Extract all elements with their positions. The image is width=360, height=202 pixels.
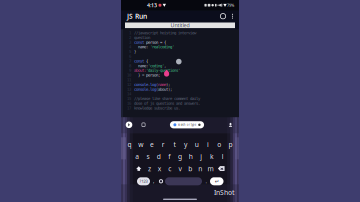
staticText: knowledge subscribe us. — [134, 106, 180, 110]
button[interactable]: search or type — [170, 121, 204, 128]
button[interactable]: Clipboard — [139, 120, 148, 129]
staticText: o — [217, 140, 221, 149]
staticText: 1 — [129, 31, 131, 35]
staticText: 6 — [129, 54, 131, 59]
staticText: 4 — [129, 45, 131, 49]
staticText: question — [134, 35, 150, 40]
button[interactable]: Run code — [218, 11, 228, 22]
button[interactable]: d — [153, 150, 164, 162]
staticText: m — [207, 164, 213, 173]
staticText: u — [195, 140, 199, 149]
staticText: person — [146, 73, 158, 77]
button[interactable]: . — [202, 177, 210, 186]
staticText: const — [134, 40, 144, 44]
button[interactable]: t — [169, 138, 180, 150]
button[interactable]: i — [202, 138, 214, 150]
button[interactable]: g — [175, 150, 185, 162]
button[interactable]: Untitled — [121, 22, 239, 29]
button[interactable]: Shift — [133, 163, 144, 175]
button[interactable]: k — [207, 150, 217, 162]
button[interactable]: c — [165, 163, 175, 175]
staticText: console.log( — [134, 87, 158, 91]
button[interactable]: r — [158, 138, 169, 150]
staticText: 9 — [129, 68, 131, 73]
staticText: JS Run — [127, 12, 147, 21]
staticText: x — [158, 164, 162, 173]
staticText: about — [158, 87, 168, 91]
staticText: k — [210, 152, 214, 161]
button[interactable]: v — [175, 163, 185, 175]
staticText: 10 — [127, 73, 131, 77]
button[interactable]: x — [155, 163, 165, 175]
staticText: h — [189, 152, 193, 161]
button[interactable]: p — [225, 138, 236, 150]
staticText: name: — [134, 45, 150, 49]
button[interactable]: y — [180, 138, 191, 150]
staticText: } = — [134, 73, 146, 77]
staticText: 'realcoding' — [150, 45, 174, 49]
staticText: 15 — [127, 96, 131, 101]
button[interactable]: Delete — [215, 163, 227, 175]
staticText: ↵ — [215, 178, 219, 184]
staticText: InShot — [214, 188, 235, 197]
button[interactable]: a — [132, 150, 143, 162]
button[interactable]: w — [135, 138, 146, 150]
button[interactable]: q — [124, 138, 135, 150]
button[interactable]: z — [144, 163, 155, 175]
button[interactable]: Space — [165, 177, 202, 185]
button[interactable]: m — [205, 163, 215, 175]
button[interactable]: , — [150, 177, 157, 186]
staticText: z — [148, 164, 151, 173]
button[interactable]: b — [185, 163, 195, 175]
staticText: n — [198, 164, 202, 173]
staticText: { — [144, 59, 148, 63]
staticText: , — [153, 178, 154, 185]
staticText: 7 — [129, 59, 131, 63]
staticText: person = { — [144, 40, 166, 44]
staticText: 12 — [127, 82, 131, 87]
staticText: , — [164, 63, 166, 68]
button[interactable]: l — [217, 150, 228, 162]
staticText: i — [207, 140, 209, 149]
staticText: dose of js questions and answers. — [134, 101, 200, 106]
staticText: 8 — [129, 63, 131, 68]
staticText: j — [200, 152, 202, 161]
staticText: r — [162, 140, 165, 149]
staticText: l — [222, 152, 224, 161]
button[interactable]: o — [214, 138, 225, 150]
staticText: console.log( — [134, 82, 158, 87]
staticText: 16 — [127, 101, 131, 106]
button[interactable]: Enter — [210, 177, 223, 185]
button[interactable]: Emoji — [157, 177, 165, 186]
staticText: 13 — [127, 87, 131, 91]
button[interactable]: e — [146, 138, 158, 150]
button[interactable]: n — [195, 163, 205, 175]
button[interactable]: More options — [228, 11, 237, 22]
staticText: q — [128, 140, 132, 149]
staticText: t — [173, 140, 175, 149]
button[interactable]: f — [164, 150, 175, 162]
button[interactable]: ?123 — [137, 177, 150, 185]
staticText: e — [150, 140, 154, 149]
staticText: s — [146, 152, 149, 161]
staticText: 17 — [127, 106, 131, 110]
button[interactable]: Voice input — [226, 120, 235, 129]
staticText: 'daily-questions' — [146, 68, 180, 73]
button[interactable]: j — [196, 150, 207, 162]
staticText: v — [178, 164, 181, 173]
staticText: name: — [134, 63, 148, 68]
staticText: ; — [158, 73, 160, 77]
staticText: 11 — [127, 78, 131, 82]
staticText: 4:13 — [147, 2, 157, 9]
button[interactable]: u — [191, 138, 202, 150]
staticText: search or type — [178, 123, 197, 126]
staticText: about: — [134, 68, 146, 73]
staticText: Untitled — [170, 22, 189, 29]
staticText: 79% — [227, 2, 234, 8]
staticText: const — [134, 59, 144, 63]
button[interactable]: Expand toolbar — [124, 120, 134, 130]
button[interactable]: h — [185, 150, 196, 162]
button[interactable]: s — [143, 150, 153, 162]
